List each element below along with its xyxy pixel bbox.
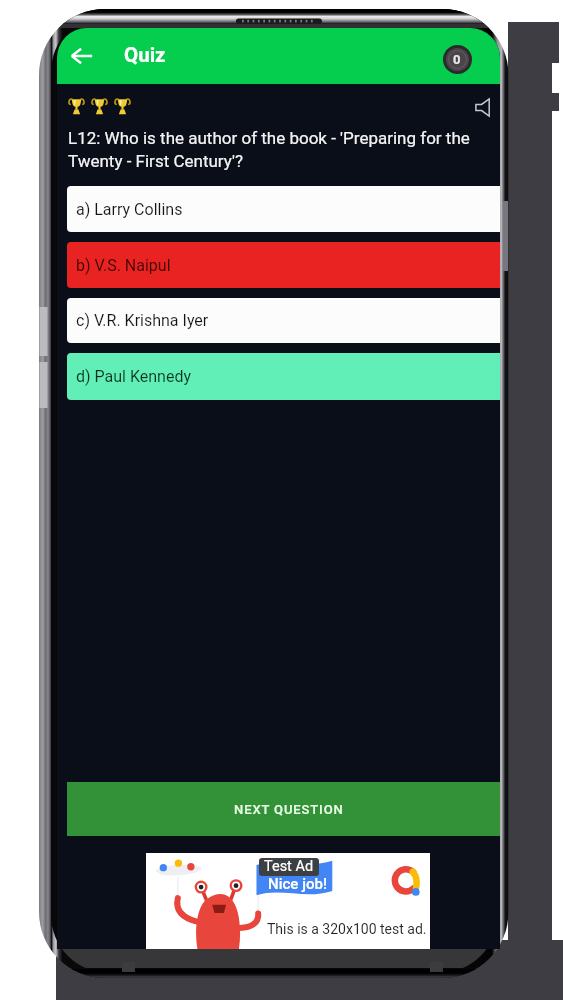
staticText: a) Larry Collins (76, 200, 183, 219)
button[interactable]: d) Paul Kennedy (67, 353, 500, 400)
staticText: c) V.R. Krishna Iyer (76, 311, 209, 330)
button[interactable]: NEXT QUESTION (67, 782, 500, 836)
button[interactable]: Sound (474, 98, 493, 117)
button[interactable]: b) V.S. Naipul (67, 242, 500, 288)
staticText: Nice job! (268, 875, 327, 893)
staticText: d) Paul Kennedy (76, 367, 192, 386)
button[interactable]: Timer (437, 39, 477, 79)
staticText: Quiz (124, 43, 166, 67)
button[interactable]: Back (60, 28, 104, 83)
staticText: 0 (453, 52, 461, 67)
staticText: NEXT QUESTION (234, 802, 344, 817)
button[interactable]: a) Larry Collins (67, 186, 500, 232)
staticText: b) V.S. Naipul (76, 256, 171, 275)
staticText: L12: Who is the author of the book - 'Pr… (68, 128, 472, 171)
button[interactable]: c) V.R. Krishna Iyer (67, 298, 500, 343)
staticText: Test Ad (264, 858, 314, 875)
staticText: This is a 320x100 test ad. (267, 921, 427, 937)
